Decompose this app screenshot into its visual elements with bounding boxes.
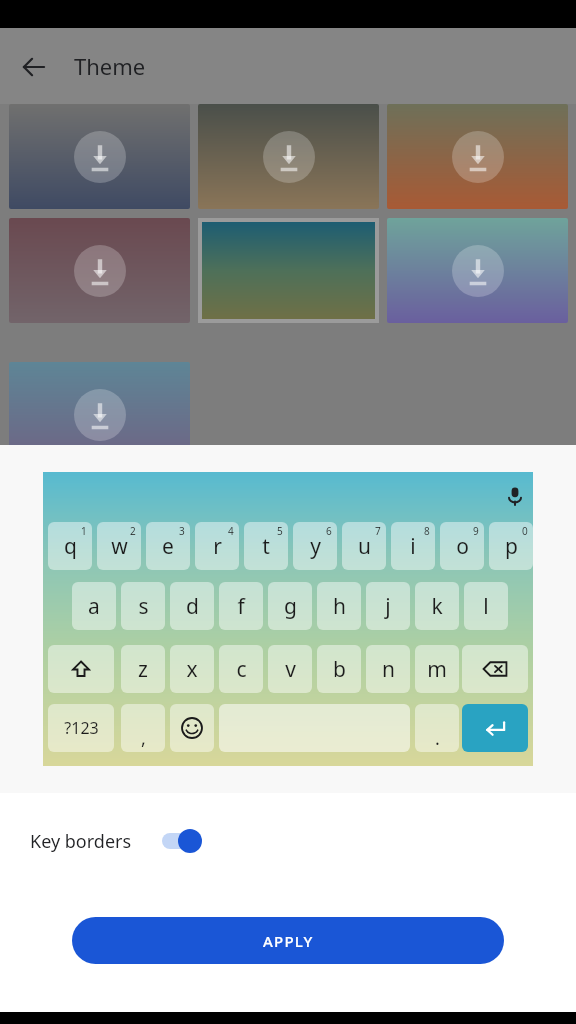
staticText: y — [310, 532, 321, 561]
button[interactable]: p — [489, 522, 533, 570]
button[interactable]: h — [317, 582, 361, 630]
button[interactable]: r — [195, 522, 239, 570]
button[interactable]: Shift — [48, 645, 114, 693]
staticText: 5 — [277, 524, 283, 538]
staticText: 9 — [473, 524, 479, 538]
staticText: Theme — [74, 51, 146, 81]
button[interactable]: m — [415, 645, 459, 693]
button[interactable]: j — [366, 582, 410, 630]
staticText: g — [284, 592, 297, 621]
button[interactable]: g — [268, 582, 312, 630]
staticText: r — [213, 532, 222, 561]
button[interactable]: Emoji — [170, 704, 214, 752]
button[interactable]: y — [293, 522, 337, 570]
button[interactable]: x — [170, 645, 214, 693]
button[interactable]: Back — [12, 45, 56, 89]
button[interactable] — [198, 104, 379, 209]
button[interactable] — [387, 104, 568, 209]
staticText: w — [111, 532, 128, 561]
button[interactable]: c — [219, 645, 263, 693]
staticText: 7 — [375, 524, 381, 538]
button[interactable]: f — [219, 582, 263, 630]
staticText: n — [382, 655, 395, 684]
button[interactable]: Key borders — [30, 817, 204, 865]
button[interactable]: l — [464, 582, 508, 630]
button[interactable]: q — [48, 522, 92, 570]
button[interactable]: e — [146, 522, 190, 570]
button[interactable] — [9, 104, 190, 209]
staticText: i — [410, 532, 416, 561]
staticText: 8 — [424, 524, 430, 538]
button[interactable]: b — [317, 645, 361, 693]
staticText: a — [88, 592, 100, 621]
staticText: 4 — [228, 524, 234, 538]
staticText: u — [358, 532, 371, 561]
button[interactable]: , — [121, 704, 165, 752]
button[interactable]: . — [415, 704, 459, 752]
staticText: ?123 — [64, 717, 99, 739]
staticText: j — [385, 592, 391, 621]
staticText: q — [64, 532, 77, 561]
staticText: l — [483, 592, 489, 621]
button[interactable]: Voice input — [495, 476, 535, 516]
button[interactable] — [9, 362, 190, 467]
button[interactable]: i — [391, 522, 435, 570]
staticText: 1 — [81, 524, 87, 538]
staticText: b — [333, 655, 346, 684]
button[interactable]: Enter — [462, 704, 528, 752]
staticText: 3 — [179, 524, 185, 538]
staticText: c — [236, 655, 247, 684]
button[interactable]: s — [121, 582, 165, 630]
staticText: o — [456, 532, 469, 561]
button[interactable]: n — [366, 645, 410, 693]
staticText: s — [138, 592, 149, 621]
button[interactable]: u — [342, 522, 386, 570]
button[interactable]: d — [170, 582, 214, 630]
button[interactable] — [9, 218, 190, 323]
button[interactable] — [198, 218, 379, 323]
staticText: h — [333, 592, 346, 621]
button[interactable] — [387, 218, 568, 323]
staticText: f — [237, 592, 245, 621]
button[interactable]: t — [244, 522, 288, 570]
staticText: APPLY — [263, 931, 314, 951]
staticText: z — [138, 655, 148, 684]
staticText: v — [285, 655, 296, 684]
staticText: Key borders — [30, 829, 132, 854]
button[interactable]: a — [72, 582, 116, 630]
staticText: p — [505, 532, 518, 561]
staticText: k — [431, 592, 443, 621]
staticText: t — [262, 532, 270, 561]
button[interactable]: z — [121, 645, 165, 693]
staticText: m — [427, 655, 447, 684]
staticText: 2 — [130, 524, 136, 538]
staticText: 6 — [326, 524, 332, 538]
button[interactable]: k — [415, 582, 459, 630]
button[interactable]: Voice input — [43, 472, 533, 766]
staticText: x — [186, 655, 198, 684]
staticText: , — [141, 726, 146, 751]
button[interactable]: APPLY — [72, 917, 504, 964]
staticText: e — [162, 532, 174, 561]
button[interactable]: w — [97, 522, 141, 570]
staticText: d — [186, 592, 199, 621]
button[interactable]: ?123 — [48, 704, 114, 752]
staticText: 0 — [522, 524, 528, 538]
staticText: . — [435, 726, 440, 751]
button[interactable]: v — [268, 645, 312, 693]
button[interactable]: Backspace — [462, 645, 528, 693]
button[interactable]: o — [440, 522, 484, 570]
